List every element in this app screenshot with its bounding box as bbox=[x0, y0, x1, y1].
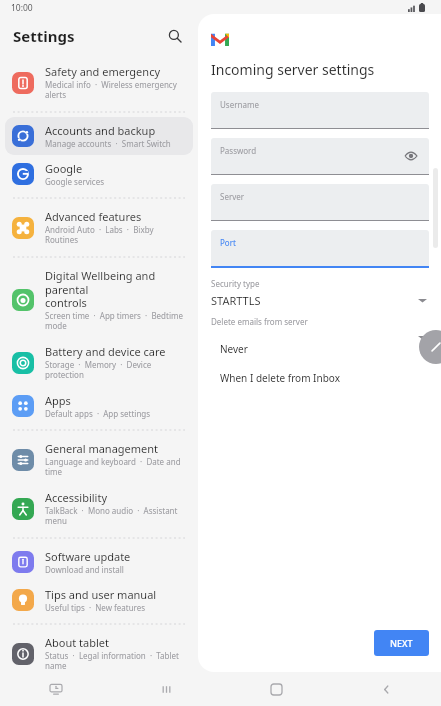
button[interactable]: Username bbox=[211, 92, 429, 128]
staticText: When I delete from Inbox bbox=[220, 371, 340, 385]
staticText: Accessibility bbox=[45, 490, 108, 505]
button[interactable]: NEXT bbox=[374, 630, 429, 656]
button[interactable]: Screenshot bbox=[0, 672, 111, 706]
staticText: STARTTLS bbox=[211, 293, 261, 308]
staticText: Google services bbox=[45, 176, 105, 187]
staticText: Username bbox=[220, 99, 259, 110]
staticText: Default apps · App settings bbox=[45, 408, 151, 419]
staticText: Medical info · Wireless emergency alerts bbox=[45, 79, 187, 101]
staticText: Language and keyboard · Date and time bbox=[45, 456, 187, 478]
button[interactable]: Apps bbox=[5, 387, 193, 425]
staticText: NEXT bbox=[390, 637, 413, 649]
button[interactable]: Google bbox=[5, 155, 193, 193]
staticText: Settings bbox=[13, 26, 75, 46]
staticText: Safety and emergency bbox=[45, 64, 161, 79]
staticText: Tips and user manual bbox=[45, 587, 157, 602]
staticText: Download and install bbox=[45, 564, 124, 575]
staticText: Password bbox=[220, 145, 257, 156]
staticText: Storage · Memory · Device protection bbox=[45, 359, 187, 381]
button[interactable]: Password bbox=[211, 138, 429, 174]
staticText: Status · Legal information · Tablet name bbox=[45, 650, 187, 672]
button[interactable]: Software update bbox=[5, 543, 193, 581]
button[interactable]: When I delete from Inbox bbox=[209, 363, 405, 392]
button[interactable]: Safety and emergency bbox=[5, 58, 193, 107]
staticText: TalkBack · Mono audio · Assistant menu bbox=[45, 505, 187, 527]
button[interactable]: Security type bbox=[211, 271, 429, 312]
staticText: Accounts and backup bbox=[45, 123, 156, 138]
staticText: Security type bbox=[211, 278, 260, 289]
button[interactable]: General management bbox=[5, 435, 193, 484]
button[interactable]: Server bbox=[211, 184, 429, 220]
staticText: Port bbox=[220, 237, 236, 248]
staticText: Digital Wellbeing and parental controls bbox=[45, 268, 187, 310]
button[interactable]: Never bbox=[209, 334, 405, 363]
button[interactable]: Accessibility bbox=[5, 484, 193, 533]
button[interactable]: Battery and device care bbox=[5, 338, 193, 387]
staticText: Android Auto · Labs · Bixby Routines bbox=[45, 224, 187, 246]
button[interactable]: Show password bbox=[402, 147, 420, 165]
staticText: Delete emails from server bbox=[211, 316, 308, 327]
staticText: Google bbox=[45, 161, 83, 176]
button[interactable]: Home bbox=[221, 672, 331, 706]
staticText: Battery and device care bbox=[45, 344, 166, 359]
staticText: 10:00 bbox=[11, 2, 33, 14]
button[interactable]: Digital Wellbeing and parental controls bbox=[5, 262, 193, 338]
staticText: Software update bbox=[45, 549, 131, 564]
staticText: Incoming server settings bbox=[211, 60, 375, 79]
staticText: Advanced features bbox=[45, 209, 142, 224]
button[interactable]: About tablet bbox=[5, 629, 193, 678]
staticText: Useful tips · New features bbox=[45, 602, 146, 613]
button[interactable]: Recents bbox=[111, 672, 221, 706]
button[interactable]: Search bbox=[162, 23, 188, 49]
staticText: About tablet bbox=[45, 635, 109, 650]
button[interactable]: Tips and user manual bbox=[5, 581, 193, 619]
button[interactable]: Back bbox=[331, 672, 441, 706]
button[interactable]: Accounts and backup bbox=[5, 117, 193, 155]
button[interactable]: Port bbox=[211, 230, 429, 266]
button[interactable]: Edit bbox=[419, 330, 441, 364]
staticText: Server bbox=[220, 191, 245, 202]
staticText: Manage accounts · Smart Switch bbox=[45, 138, 171, 149]
staticText: Screen time · App timers · Bedtime mode bbox=[45, 310, 183, 332]
staticText: General management bbox=[45, 441, 159, 456]
staticText: Never bbox=[220, 342, 248, 356]
button[interactable]: Advanced features bbox=[5, 203, 193, 252]
staticText: Apps bbox=[45, 393, 71, 408]
